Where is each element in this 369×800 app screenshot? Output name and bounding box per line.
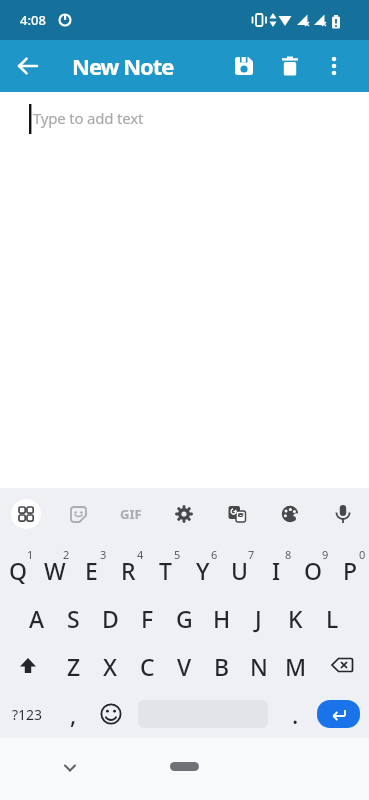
button[interactable]: K: [277, 594, 314, 642]
button[interactable]: ?123: [0, 690, 55, 738]
button[interactable]: S: [55, 594, 92, 642]
staticText: I: [272, 555, 281, 586]
button[interactable]: Z: [55, 642, 92, 690]
button[interactable]: A: [18, 594, 55, 642]
staticText: 2: [63, 547, 70, 562]
staticText: New Note: [72, 51, 174, 81]
staticText: Y: [196, 555, 210, 586]
button[interactable]: D: [92, 594, 129, 642]
staticText: H: [213, 603, 231, 634]
staticText: W: [44, 555, 66, 586]
button[interactable]: [316, 488, 369, 540]
button[interactable]: T: [147, 546, 184, 594]
staticText: X: [103, 651, 118, 682]
staticText: M: [285, 651, 307, 682]
button[interactable]: [0, 642, 55, 690]
button[interactable]: E: [73, 546, 110, 594]
staticText: J: [255, 603, 262, 634]
button[interactable]: P: [332, 546, 369, 594]
staticText: P: [343, 555, 358, 586]
staticText: G: [176, 603, 193, 634]
staticText: 8: [285, 547, 292, 562]
button[interactable]: C: [129, 642, 166, 690]
staticText: U: [231, 555, 248, 586]
staticText: .: [292, 699, 299, 730]
staticText: V: [177, 651, 192, 682]
staticText: 0: [359, 547, 366, 562]
button[interactable]: M: [277, 642, 314, 690]
button[interactable]: [92, 690, 129, 738]
button[interactable]: [0, 488, 52, 540]
button[interactable]: [263, 488, 316, 540]
button[interactable]: [313, 40, 355, 92]
staticText: Q: [9, 555, 28, 586]
button[interactable]: [317, 700, 360, 728]
button[interactable]: [210, 488, 263, 540]
button[interactable]: G: [166, 594, 203, 642]
button[interactable]: X: [92, 642, 129, 690]
staticText: ,: [70, 699, 77, 730]
staticText: O: [304, 555, 323, 586]
button[interactable]: L: [314, 594, 351, 642]
staticText: ?123: [12, 705, 43, 724]
button[interactable]: R: [110, 546, 147, 594]
button[interactable]: [221, 40, 267, 92]
button[interactable]: [8, 46, 48, 86]
staticText: F: [141, 603, 154, 634]
staticText: E: [85, 555, 98, 586]
button[interactable]: I: [258, 546, 295, 594]
staticText: 5: [174, 547, 181, 562]
staticText: 1: [27, 547, 34, 562]
button[interactable]: Y: [184, 546, 221, 594]
button[interactable]: H: [203, 594, 240, 642]
staticText: T: [159, 555, 172, 586]
button[interactable]: ,: [55, 690, 92, 738]
staticText: 4:08: [20, 11, 46, 29]
staticText: 6: [211, 547, 218, 562]
staticText: Type to add text: [33, 108, 144, 128]
staticText: A: [29, 603, 45, 634]
button[interactable]: .: [277, 690, 314, 738]
staticText: C: [140, 651, 155, 682]
button[interactable]: [267, 40, 313, 92]
staticText: GIF: [120, 505, 142, 523]
button[interactable]: O: [295, 546, 332, 594]
button[interactable]: J: [240, 594, 277, 642]
button[interactable]: [314, 642, 369, 690]
button[interactable]: GIF: [104, 488, 157, 540]
staticText: D: [102, 603, 119, 634]
button[interactable]: [52, 488, 104, 540]
staticText: S: [67, 603, 80, 634]
button[interactable]: B: [203, 642, 240, 690]
button[interactable]: U: [221, 546, 258, 594]
button[interactable]: W: [36, 546, 73, 594]
staticText: L: [326, 603, 339, 634]
button[interactable]: N: [240, 642, 277, 690]
staticText: N: [250, 651, 268, 682]
button[interactable]: [170, 762, 199, 771]
button[interactable]: [55, 753, 85, 783]
staticText: K: [288, 603, 303, 634]
button[interactable]: Q: [0, 546, 36, 594]
staticText: 3: [100, 547, 107, 562]
staticText: B: [214, 651, 230, 682]
staticText: R: [121, 555, 136, 586]
staticText: 7: [248, 547, 255, 562]
staticText: Z: [67, 651, 81, 682]
button[interactable]: [157, 488, 210, 540]
button[interactable]: F: [129, 594, 166, 642]
staticText: 4: [137, 547, 144, 562]
button[interactable]: V: [166, 642, 203, 690]
staticText: 9: [322, 547, 329, 562]
